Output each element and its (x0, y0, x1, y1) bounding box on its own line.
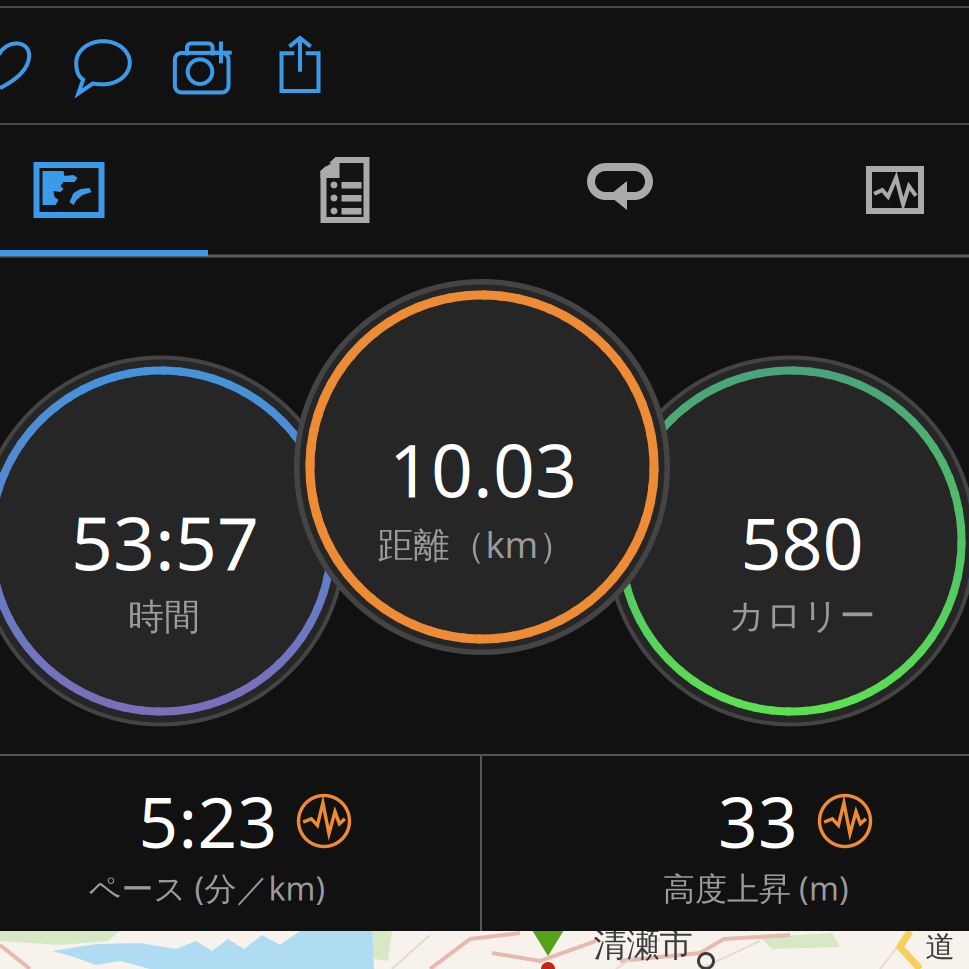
button[interactable]: Share (251, 9, 349, 121)
button[interactable]: Comment (54, 10, 152, 122)
button[interactable]: Laps (499, 127, 741, 253)
button[interactable]: Charts (774, 127, 969, 253)
staticText: 5:23 (138, 775, 277, 867)
staticText: カロリー (728, 594, 875, 638)
staticText: 10.03 (389, 420, 577, 518)
staticText: 距離（km） (377, 520, 574, 568)
staticText: 33 (718, 775, 798, 867)
button[interactable]: Summary (224, 127, 466, 253)
button[interactable]: Add photo (154, 11, 252, 123)
staticText: 道 (925, 929, 954, 965)
staticText: 高度上昇 (m) (663, 867, 849, 909)
staticText: 清瀬市 (593, 924, 692, 965)
staticText: 53:57 (71, 493, 259, 591)
button[interactable]: Map (0, 127, 190, 253)
staticText: 580 (740, 494, 863, 590)
staticText: 時間 (128, 595, 200, 639)
staticText: ペース (分／km) (88, 867, 325, 909)
button[interactable]: Like (0, 9, 49, 121)
